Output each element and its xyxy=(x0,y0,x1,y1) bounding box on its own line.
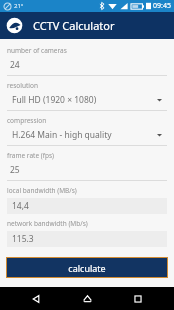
button[interactable]: compression xyxy=(0,116,174,151)
staticText: local bandwidth (MB/s) xyxy=(7,186,77,195)
staticText: 25 xyxy=(10,164,167,176)
other: App logo xyxy=(6,17,23,34)
staticText: 14,4 xyxy=(12,200,29,212)
staticText: Full HD (1920 × 1080) xyxy=(12,94,157,106)
button[interactable]: calculate xyxy=(6,257,168,278)
staticText: 115.3 xyxy=(12,233,34,245)
staticText: CCTV Calculator xyxy=(33,18,115,33)
staticText: 21° xyxy=(14,2,24,10)
staticText: network bandwidth (Mb/s) xyxy=(7,219,88,228)
button[interactable]: number of cameras xyxy=(0,46,174,81)
staticText: number of cameras xyxy=(7,46,67,55)
staticText: 09:45 xyxy=(153,1,171,11)
staticText: resolution xyxy=(7,81,38,90)
button[interactable]: Back xyxy=(21,287,51,310)
staticText: frame rate (fps) xyxy=(7,151,55,160)
staticText: calculate xyxy=(68,262,106,274)
button[interactable]: Home xyxy=(72,287,102,310)
staticText: 24 xyxy=(10,59,167,71)
staticText: compression xyxy=(7,116,47,125)
button[interactable]: resolution xyxy=(0,81,174,116)
button[interactable]: frame rate (fps) xyxy=(0,151,174,186)
staticText: H.264 Main - high quality xyxy=(12,129,157,141)
button[interactable]: Recent apps xyxy=(123,287,153,310)
